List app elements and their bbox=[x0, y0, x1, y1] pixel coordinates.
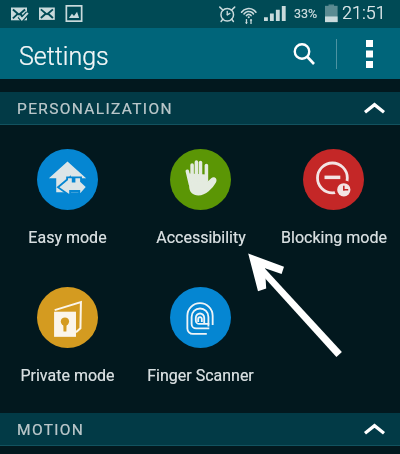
staticText: PERSONALIZATION bbox=[17, 100, 173, 118]
button[interactable]: Search bbox=[280, 29, 328, 79]
button[interactable]: Accessibility bbox=[134, 149, 267, 247]
button[interactable]: Finger Scanner bbox=[134, 287, 267, 385]
staticText: Blocking mode bbox=[281, 228, 387, 247]
button[interactable]: PERSONALIZATION bbox=[0, 92, 400, 125]
button[interactable]: Private mode bbox=[0, 287, 134, 385]
staticText: MOTION bbox=[17, 421, 85, 439]
button[interactable]: Blocking mode bbox=[267, 149, 400, 247]
staticText: Accessibility bbox=[156, 228, 246, 247]
staticText: Settings bbox=[19, 42, 109, 71]
staticText: 21:51 bbox=[342, 2, 386, 23]
staticText: Easy mode bbox=[28, 228, 107, 247]
button[interactable]: More options bbox=[347, 29, 391, 79]
staticText: Private mode bbox=[20, 366, 115, 385]
button[interactable]: MOTION bbox=[0, 413, 400, 446]
staticText: 33% bbox=[294, 6, 318, 21]
button[interactable]: Easy mode bbox=[0, 149, 134, 247]
staticText: Finger Scanner bbox=[147, 366, 254, 385]
